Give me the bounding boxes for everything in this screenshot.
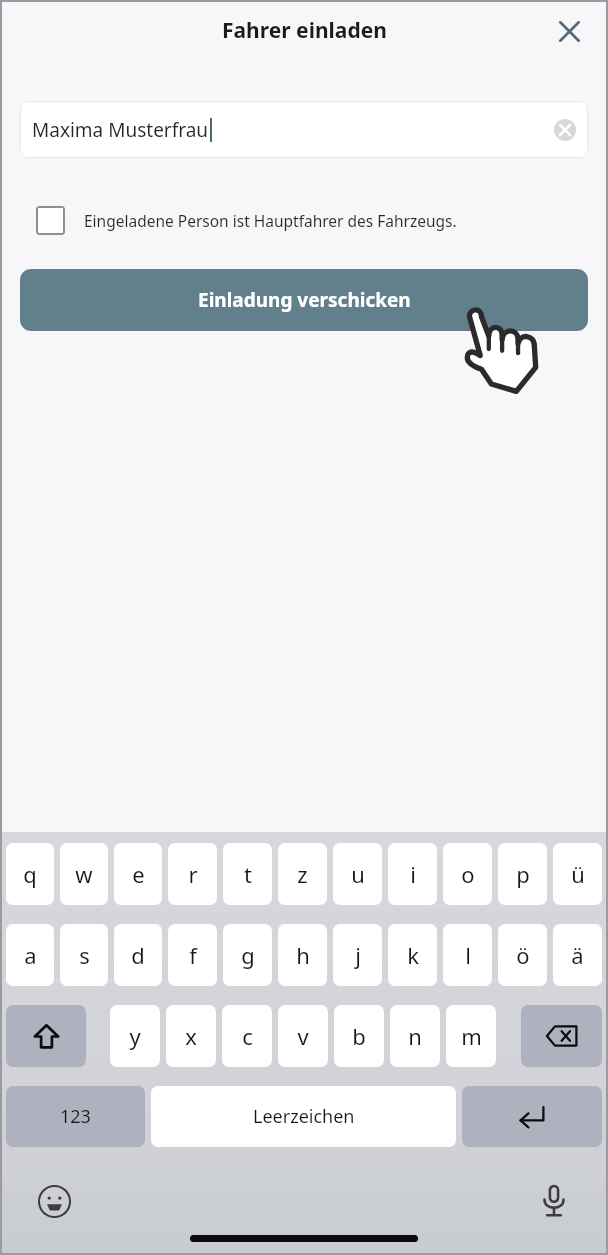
- staticText: j: [355, 940, 361, 970]
- button[interactable]: Eingabetaste: [462, 1086, 602, 1147]
- staticText: Eingeladene Person ist Hauptfahrer des F…: [84, 210, 457, 231]
- staticText: Leerzeichen: [253, 1104, 355, 1129]
- button[interactable]: l: [443, 924, 492, 986]
- button[interactable]: 123: [6, 1086, 145, 1147]
- button[interactable]: f: [168, 924, 217, 986]
- staticText: g: [241, 940, 255, 970]
- staticText: i: [410, 859, 416, 889]
- staticText: 123: [60, 1104, 91, 1129]
- staticText: Einladung verschicken: [198, 287, 411, 313]
- staticText: r: [188, 859, 198, 889]
- staticText: a: [24, 940, 37, 970]
- staticText: m: [461, 1021, 482, 1051]
- button[interactable]: m: [446, 1005, 496, 1067]
- staticText: b: [352, 1021, 366, 1051]
- button[interactable]: g: [223, 924, 272, 986]
- staticText: f: [189, 940, 197, 970]
- button[interactable]: Löschen: [521, 1005, 602, 1067]
- button[interactable]: h: [278, 924, 327, 986]
- button[interactable]: ä: [553, 924, 602, 986]
- button[interactable]: ü: [553, 843, 602, 905]
- button[interactable]: d: [114, 924, 162, 986]
- staticText: c: [242, 1021, 253, 1051]
- button[interactable]: Emoji: [34, 1181, 74, 1221]
- staticText: l: [465, 940, 471, 970]
- staticText: t: [244, 859, 252, 889]
- button[interactable]: Leerzeichen: [151, 1086, 456, 1147]
- staticText: e: [132, 859, 145, 889]
- button[interactable]: u: [333, 843, 382, 905]
- button[interactable]: t: [223, 843, 272, 905]
- button[interactable]: x: [166, 1005, 216, 1067]
- button[interactable]: c: [222, 1005, 272, 1067]
- staticText: Fahrer einladen: [222, 16, 387, 45]
- button[interactable]: b: [334, 1005, 384, 1067]
- staticText: d: [131, 940, 145, 970]
- staticText: z: [297, 859, 308, 889]
- button[interactable]: a: [6, 924, 54, 986]
- button[interactable]: r: [168, 843, 217, 905]
- button[interactable]: z: [278, 843, 327, 905]
- staticText: ö: [516, 940, 530, 970]
- button[interactable]: ö: [498, 924, 547, 986]
- staticText: v: [297, 1021, 309, 1051]
- button[interactable]: w: [60, 843, 108, 905]
- button[interactable]: o: [443, 843, 492, 905]
- staticText: ü: [571, 859, 585, 889]
- button[interactable]: k: [388, 924, 437, 986]
- button[interactable]: q: [6, 843, 54, 905]
- button[interactable]: e: [114, 843, 162, 905]
- staticText: s: [79, 940, 90, 970]
- staticText: x: [185, 1021, 197, 1051]
- button[interactable]: Eingeladene Person ist Hauptfahrer des F…: [36, 200, 572, 240]
- button[interactable]: Einladung verschicken: [20, 269, 588, 331]
- button[interactable]: n: [390, 1005, 440, 1067]
- staticText: w: [75, 859, 93, 889]
- button[interactable]: v: [278, 1005, 328, 1067]
- button[interactable]: y: [110, 1005, 160, 1067]
- button[interactable]: p: [498, 843, 547, 905]
- staticText: n: [408, 1021, 422, 1051]
- staticText: Maxima Musterfrau: [32, 117, 209, 143]
- button[interactable]: Eingabe löschen: [552, 117, 578, 143]
- button[interactable]: Umschalttaste: [6, 1005, 86, 1067]
- button[interactable]: Maxima Musterfrau: [20, 101, 588, 158]
- staticText: ä: [571, 940, 584, 970]
- staticText: k: [407, 940, 419, 970]
- staticText: h: [296, 940, 310, 970]
- staticText: q: [23, 859, 37, 889]
- button[interactable]: j: [333, 924, 382, 986]
- staticText: u: [351, 859, 365, 889]
- staticText: p: [516, 859, 530, 889]
- button[interactable]: i: [388, 843, 437, 905]
- button[interactable]: s: [60, 924, 108, 986]
- button[interactable]: Spracheingabe: [534, 1181, 574, 1221]
- button[interactable]: Schließen: [552, 14, 586, 48]
- staticText: y: [129, 1021, 141, 1051]
- staticText: o: [461, 859, 475, 889]
